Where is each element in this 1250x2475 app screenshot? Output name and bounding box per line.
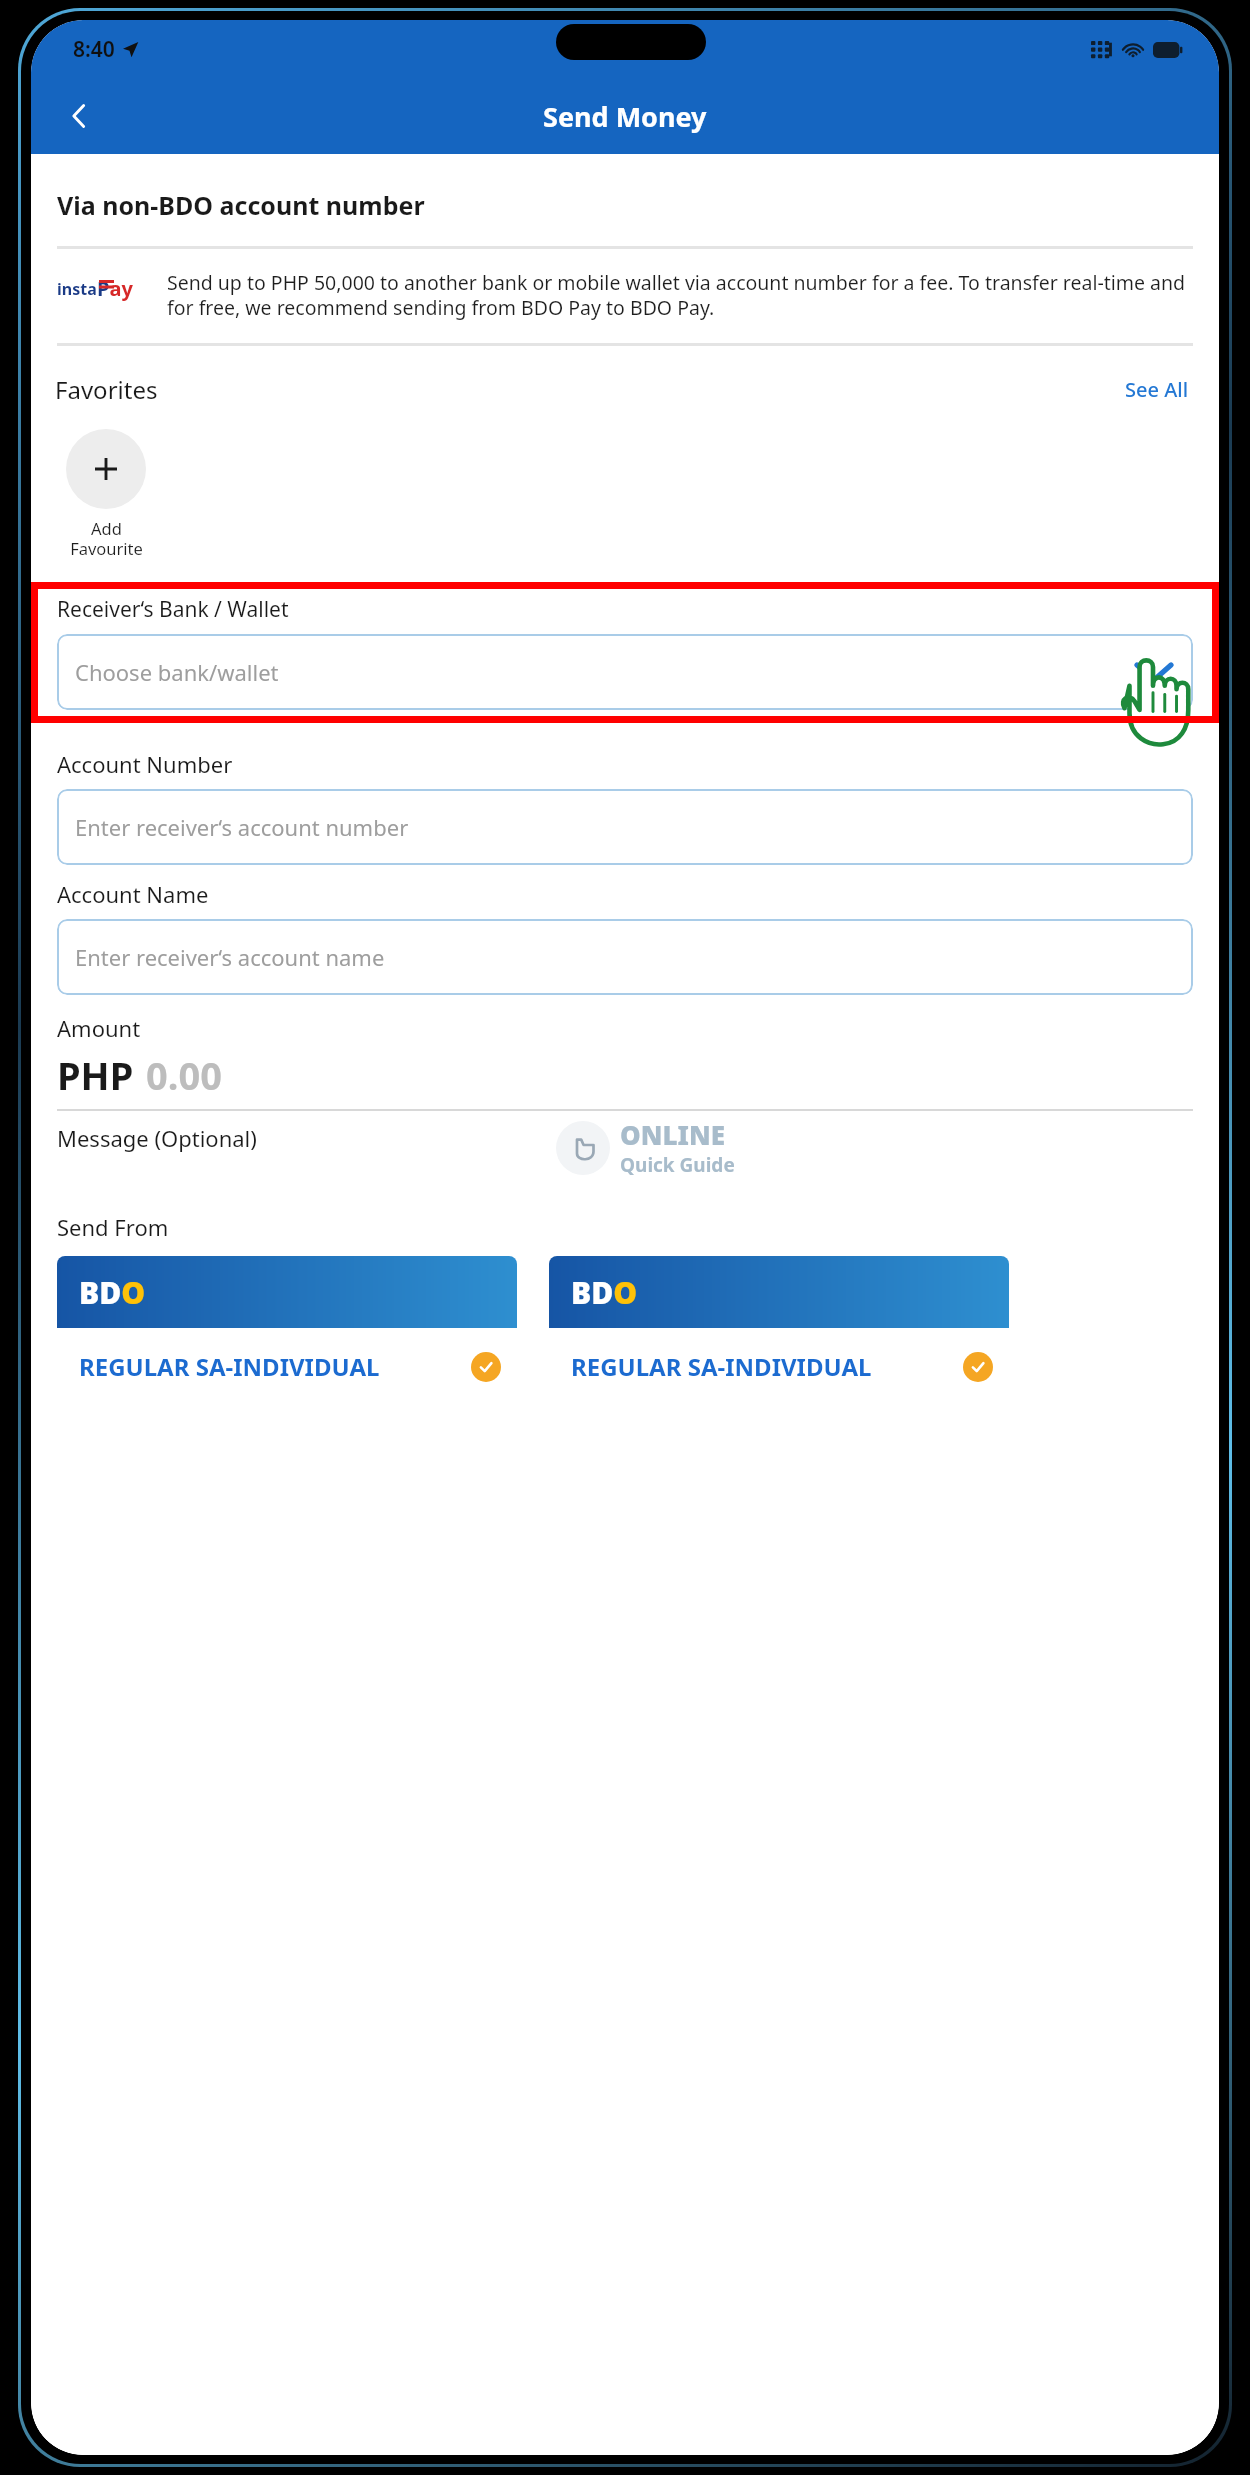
staticText: Account Name (57, 879, 209, 909)
button[interactable]: Choose bank/wallet (57, 634, 1193, 710)
staticText: Enter receiver‘s account name (75, 942, 385, 972)
staticText: insta (57, 278, 97, 300)
staticText: Receiver‘s Bank / Wallet (57, 595, 289, 624)
staticText: PHP (57, 1049, 134, 1101)
staticText: REGULAR SA-INDIVIDUAL (79, 1350, 380, 1383)
staticText: Amount (57, 1013, 141, 1043)
staticText: Add Favourite (70, 517, 143, 560)
staticText: Account Number (57, 749, 233, 779)
button[interactable]: Add Favourite (57, 429, 155, 560)
staticText: See All (1125, 376, 1189, 403)
staticText: Enter receiver‘s account number (75, 812, 409, 842)
staticText: Via non-BDO account number (57, 188, 425, 222)
staticText: BDO (79, 1272, 146, 1313)
staticText: 8:40 (73, 35, 115, 64)
staticText: Pay (97, 275, 133, 302)
staticText: Send From (57, 1212, 169, 1242)
staticText: REGULAR SA-INDIVIDUAL (571, 1350, 872, 1383)
button[interactable]: Enter receiver‘s account name (57, 919, 1193, 995)
button[interactable]: See All (1121, 372, 1193, 407)
staticText: BDO (571, 1272, 638, 1313)
staticText: Send Money (543, 98, 707, 135)
staticText: Favorites (55, 373, 158, 406)
button[interactable]: BDO (549, 1256, 1009, 1403)
button[interactable]: BDO (57, 1256, 517, 1403)
button[interactable]: Enter receiver‘s account number (57, 789, 1193, 865)
staticText: ONLINE (620, 1117, 725, 1152)
button[interactable]: Back (55, 92, 103, 140)
staticText: Send up to PHP 50,000 to another bank or… (167, 269, 1193, 321)
staticText: Message (Optional) (57, 1123, 257, 1153)
staticText: Quick Guide (620, 1152, 735, 1178)
staticText: Choose bank/wallet (75, 657, 279, 687)
staticText: 0.00 (146, 1049, 222, 1101)
